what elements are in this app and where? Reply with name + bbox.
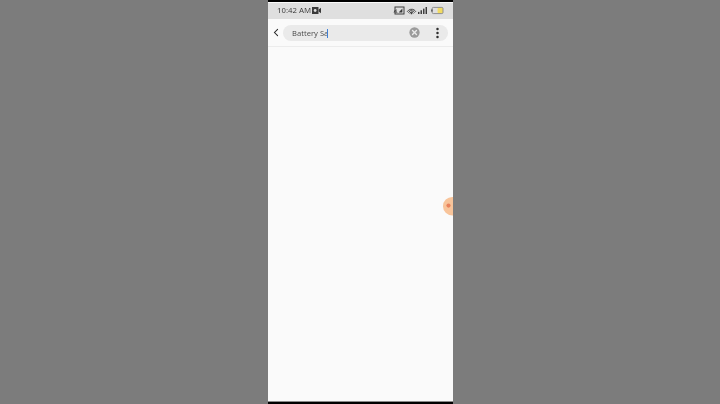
button[interactable]: Clear search [408, 26, 421, 39]
button[interactable]: More options [431, 27, 443, 39]
staticText: Battery Sa [292, 28, 329, 38]
staticText: 10:42 AM [277, 5, 312, 16]
button[interactable] [283, 25, 448, 41]
button[interactable]: Back [270, 26, 282, 38]
